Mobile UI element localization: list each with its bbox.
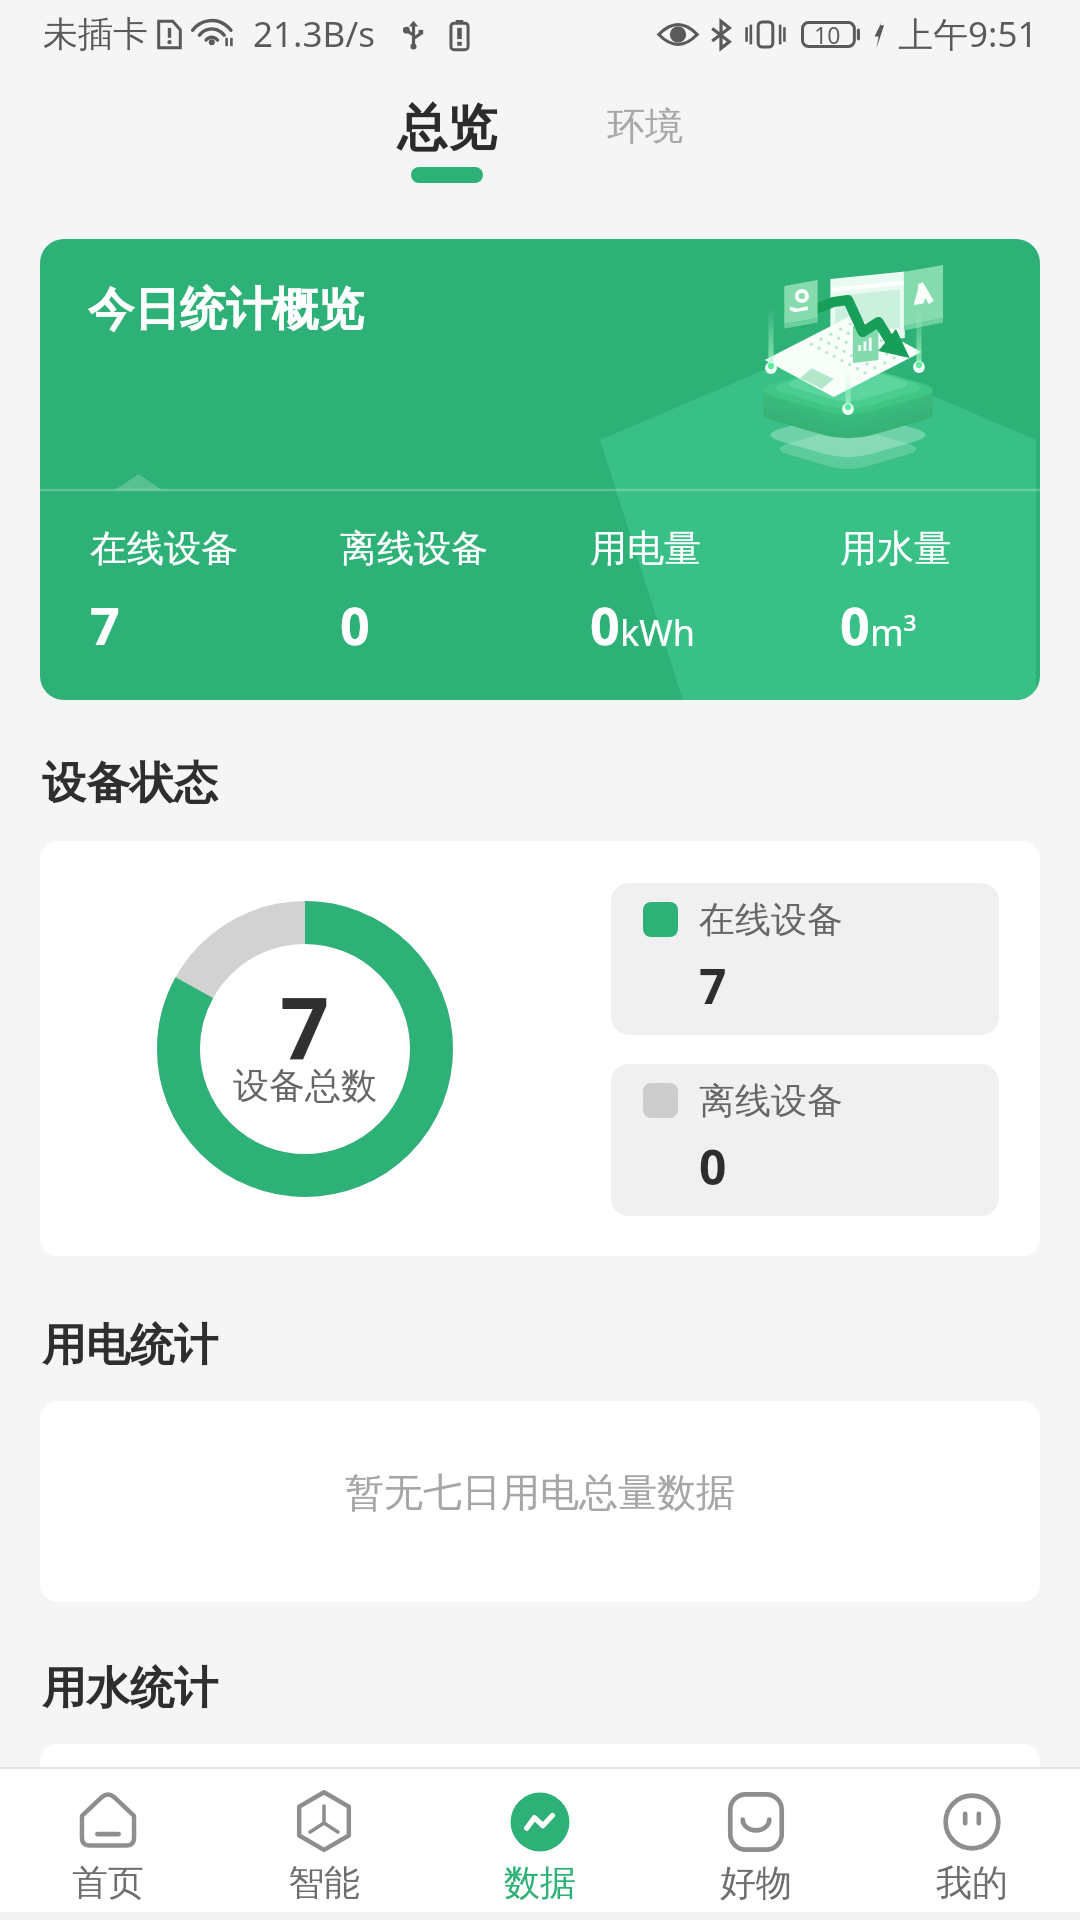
staticText: 数据: [504, 1860, 576, 1905]
staticText: 今日统计概览: [88, 281, 364, 339]
staticText: 离线设备: [340, 525, 488, 572]
other: 数据: [509, 1791, 571, 1853]
other: 智能: [293, 1791, 355, 1853]
button[interactable]: [40, 1744, 1040, 1920]
button[interactable]: 好物: [648, 1769, 864, 1912]
button[interactable]: 离线设备: [611, 1064, 999, 1216]
staticText: 0: [340, 589, 370, 660]
staticText: 未插卡: [43, 12, 148, 56]
staticText: 用电统计: [42, 1318, 218, 1373]
button[interactable]: 总览: [371, 68, 523, 191]
staticText: 总览: [397, 97, 497, 160]
staticText: 离线设备: [699, 1078, 843, 1123]
staticText: 环境: [607, 102, 683, 150]
staticText: 上午9:51: [898, 10, 1038, 58]
staticText: 我的: [936, 1860, 1008, 1905]
staticText: 设备状态: [42, 756, 218, 811]
button[interactable]: 7: [40, 841, 1040, 1256]
button[interactable]: 在线设备: [611, 883, 999, 1035]
button[interactable]: 数据: [432, 1769, 648, 1912]
staticText: 智能: [288, 1860, 360, 1905]
button[interactable]: 今日统计概览: [40, 239, 1040, 700]
button[interactable]: 环境: [581, 68, 709, 158]
button[interactable]: 智能: [216, 1769, 432, 1912]
staticText: 10: [814, 19, 841, 50]
staticText: 好物: [720, 1860, 792, 1905]
staticText: 在线设备: [699, 897, 843, 942]
staticText: 设备总数: [233, 1063, 377, 1108]
staticText: 7: [280, 968, 330, 1085]
other: 好物: [725, 1791, 787, 1853]
staticText: 21.3B/s: [253, 10, 375, 58]
staticText: 用水统计: [42, 1661, 218, 1716]
staticText: 0: [590, 589, 620, 660]
staticText: kWh: [620, 608, 695, 657]
other: 首页: [77, 1791, 139, 1853]
staticText: 0: [699, 1134, 727, 1199]
staticText: 用电量: [590, 525, 701, 572]
other: 我的: [941, 1791, 1003, 1853]
button[interactable]: 暂无七日用电总量数据: [40, 1401, 1040, 1602]
staticText: 0: [840, 589, 870, 660]
staticText: 在线设备: [90, 525, 238, 572]
button[interactable]: 首页: [0, 1769, 216, 1912]
staticText: m³: [870, 608, 917, 657]
staticText: 暂无七日用电总量数据: [345, 1468, 735, 1517]
staticText: 用水量: [840, 525, 951, 572]
staticText: 首页: [72, 1860, 144, 1905]
staticText: 7: [699, 953, 727, 1018]
button[interactable]: 我的: [864, 1769, 1080, 1912]
staticText: 7: [90, 589, 120, 660]
